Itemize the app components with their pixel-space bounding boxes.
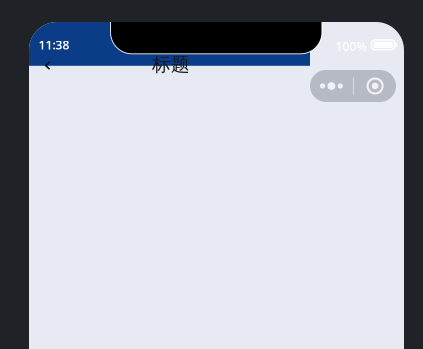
button[interactable]: Back [28,51,68,81]
staticText: 100% [335,38,366,54]
button[interactable]: More [310,70,353,102]
button[interactable]: Close [354,70,396,102]
staticText: 标题 [152,53,190,76]
staticText: 11:38 [38,37,69,53]
